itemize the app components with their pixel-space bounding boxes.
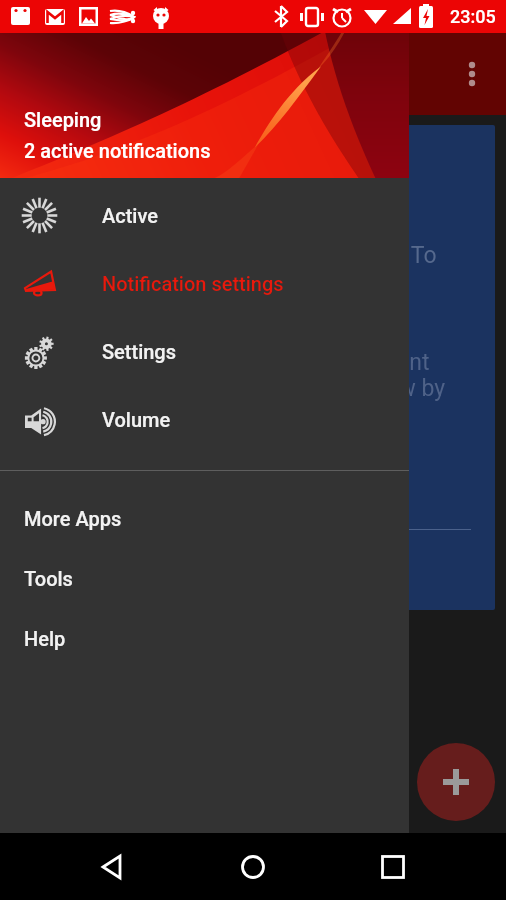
- button[interactable]: Notification settings: [0, 249, 409, 317]
- button[interactable]: More options: [448, 50, 496, 98]
- button[interactable]: Tools: [0, 548, 409, 608]
- staticText: review by: [350, 375, 446, 402]
- staticText: Weekly Report To: [259, 242, 437, 269]
- button[interactable]: Add: [417, 743, 495, 821]
- staticText: Volume: [102, 408, 171, 431]
- button[interactable]: Weekly Report To: [11, 125, 495, 610]
- staticText: Help: [24, 627, 66, 650]
- button[interactable]: Active: [0, 181, 409, 249]
- button[interactable]: Home: [226, 840, 280, 894]
- staticText: 2 active notifications: [24, 139, 211, 162]
- staticText: Most recent: [307, 349, 430, 376]
- staticText: Sleeping: [24, 108, 102, 131]
- staticText: More Apps: [24, 507, 122, 530]
- staticText: Active: [102, 204, 158, 227]
- button[interactable]: Settings: [0, 317, 409, 385]
- button[interactable]: More Apps: [0, 488, 409, 548]
- staticText: Notification settings: [102, 272, 284, 295]
- button[interactable]: Recent apps: [366, 840, 420, 894]
- staticText: Settings: [102, 340, 177, 363]
- button[interactable]: Help: [0, 608, 409, 668]
- staticText: 23:05: [450, 6, 496, 27]
- staticText: Tools: [24, 567, 73, 590]
- button[interactable]: Back: [86, 840, 140, 894]
- button[interactable]: Volume: [0, 385, 409, 453]
